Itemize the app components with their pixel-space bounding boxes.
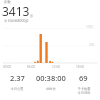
- staticText: 3413: [2, 3, 30, 19]
- staticText: 1000: [86, 25, 93, 29]
- staticText: 06:00: [27, 65, 36, 69]
- staticText: 12:00: [52, 65, 61, 69]
- staticText: 00:38:00: [36, 73, 66, 83]
- staticText: 今日目标8000步: [4, 18, 29, 23]
- staticText: 步数: [4, 0, 11, 4]
- button[interactable]: 今日公里: [0, 73, 34, 91]
- staticText: 500: [89, 43, 95, 47]
- staticText: 千卡热量 今日消耗: [77, 87, 91, 95]
- staticText: 00:00: [3, 65, 12, 69]
- staticText: 18:00: [76, 65, 85, 69]
- staticText: 69: [79, 73, 88, 83]
- staticText: 2.37: [10, 73, 25, 83]
- staticText: 步: [30, 14, 34, 18]
- staticText: 今日公里: [10, 87, 24, 91]
- staticText: 总时长: [46, 87, 56, 91]
- button[interactable]: 千卡热量 今日消耗: [67, 73, 100, 95]
- button[interactable]: 总时长: [34, 73, 67, 91]
